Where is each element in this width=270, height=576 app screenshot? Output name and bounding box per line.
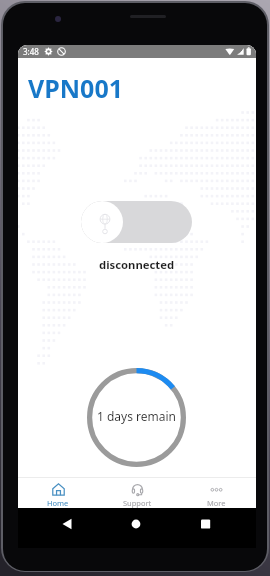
staticText: Home — [47, 498, 69, 508]
staticText: More — [207, 498, 226, 508]
staticText: 3:48 — [23, 46, 39, 57]
staticText: 1 days remain — [97, 408, 177, 424]
button[interactable]: VPN connection toggle — [81, 201, 192, 243]
button[interactable]: Support — [98, 478, 177, 508]
staticText: VPN001 — [28, 71, 124, 105]
staticText: disconnected — [99, 257, 175, 272]
staticText: Support — [123, 498, 152, 508]
button[interactable]: More — [177, 478, 256, 508]
button[interactable]: Home — [18, 478, 98, 508]
